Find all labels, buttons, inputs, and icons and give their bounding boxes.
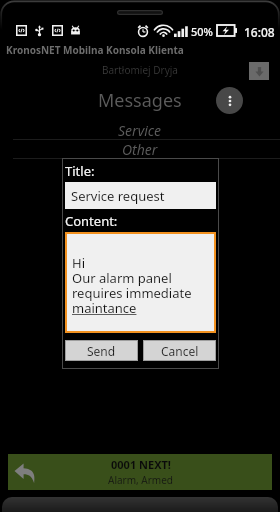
staticText: Content:	[65, 212, 118, 230]
staticText: requires immediate	[72, 284, 192, 302]
staticText: Service	[118, 121, 162, 139]
staticText: Cancel	[161, 343, 199, 359]
button[interactable]: Back	[8, 454, 272, 491]
staticText: 16:08	[244, 24, 275, 37]
button[interactable]: Cancel	[143, 340, 216, 361]
button[interactable]: Download	[249, 62, 269, 80]
button[interactable]: Send	[65, 340, 138, 361]
staticText: Alarm, Armed	[108, 473, 173, 487]
staticText: Our alarm panel	[72, 269, 172, 287]
staticText: Service request	[71, 187, 165, 205]
button[interactable]: Other	[0, 140, 280, 159]
staticText: KronosNET Mobilna Konsola Klienta	[6, 43, 184, 57]
staticText: 50%	[191, 24, 213, 37]
staticText: Hi	[72, 254, 85, 272]
button[interactable]: Service	[0, 121, 280, 140]
staticText: Title:	[65, 162, 95, 180]
staticText: Bartłomiej Dryja	[102, 63, 178, 77]
staticText: Messages	[98, 88, 182, 113]
other: Back	[14, 461, 38, 485]
staticText: Other	[122, 140, 158, 158]
staticText: 0001 NEXT!	[111, 457, 171, 472]
staticText: maintance	[72, 299, 137, 317]
staticText: Send	[87, 343, 116, 359]
button[interactable]: More options	[216, 87, 243, 114]
